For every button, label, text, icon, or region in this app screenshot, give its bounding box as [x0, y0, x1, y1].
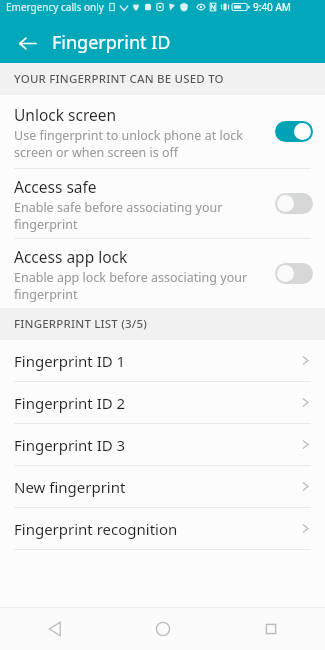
button[interactable]: Fingerprint ID 2: [0, 382, 325, 423]
staticText: YOUR FINGERPRINT CAN BE USED TO: [14, 71, 224, 87]
button[interactable]: Unlock screen: [0, 95, 325, 168]
button[interactable]: Access app lock: [0, 239, 325, 308]
staticText: Fingerprint ID 3: [14, 435, 300, 455]
staticText: FINGERPRINT LIST (3/5): [14, 316, 147, 332]
button[interactable]: Home: [109, 608, 217, 650]
staticText: Access app lock: [14, 246, 128, 267]
button[interactable]: Back: [0, 608, 109, 650]
staticText: New fingerprint: [14, 477, 300, 497]
staticText: Fingerprint recognition: [14, 519, 300, 539]
staticText: Fingerprint ID 2: [14, 393, 300, 413]
staticText: Enable safe before associating your fing…: [14, 199, 223, 232]
button[interactable]: Fingerprint ID 3: [0, 424, 325, 465]
button[interactable]: Fingerprint recognition: [0, 508, 325, 549]
staticText: Emergency calls only: [6, 0, 104, 14]
button[interactable]: Recents: [217, 608, 325, 650]
staticText: Fingerprint ID 1: [14, 351, 300, 371]
staticText: Access safe: [14, 176, 97, 197]
button[interactable]: Access safe: [0, 169, 325, 238]
button[interactable]: Off: [275, 263, 313, 284]
staticText: Enable app lock before associating your …: [14, 269, 248, 302]
button[interactable]: Fingerprint ID 1: [0, 340, 325, 381]
staticText: Fingerprint ID: [52, 30, 171, 55]
button[interactable]: On: [275, 121, 313, 142]
staticText: 9:40 AM: [253, 0, 291, 14]
button[interactable]: Off: [275, 193, 313, 214]
button[interactable]: New fingerprint: [0, 466, 325, 507]
staticText: Unlock screen: [14, 104, 117, 125]
button[interactable]: Back: [10, 26, 44, 60]
staticText: Use fingerprint to unlock phone at lock …: [14, 127, 243, 160]
